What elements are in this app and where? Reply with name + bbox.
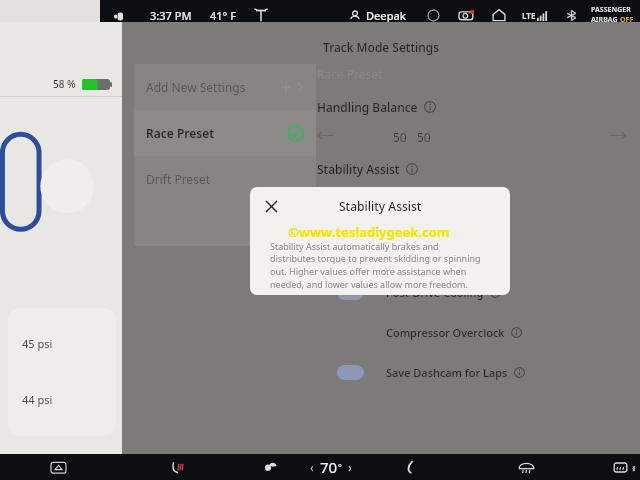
staticText: Add New Settings bbox=[146, 79, 246, 95]
staticText: ‹ bbox=[310, 459, 314, 475]
button[interactable]: Close bbox=[260, 195, 282, 217]
button[interactable]: Fan bbox=[258, 455, 282, 479]
button[interactable]: Post-Drive Cooling bbox=[317, 280, 626, 304]
button[interactable]: Handling Balance bbox=[317, 99, 436, 115]
staticText: 3:37 PM bbox=[150, 8, 192, 23]
button[interactable]: Home bbox=[490, 6, 508, 24]
staticText: Deepak bbox=[366, 8, 406, 23]
button[interactable]: Seat heater bbox=[166, 455, 190, 479]
staticText: PASSENGER bbox=[591, 5, 631, 15]
staticText: ° bbox=[338, 461, 342, 473]
staticText: LTE bbox=[522, 10, 536, 21]
staticText: Save Dashcam for Laps bbox=[386, 365, 508, 380]
staticText: OFF bbox=[620, 15, 634, 25]
button[interactable]: Touch bbox=[112, 7, 128, 23]
staticText: 41° F bbox=[210, 8, 236, 23]
staticText: 45 psi bbox=[22, 336, 53, 351]
button[interactable]: Wiper bbox=[424, 6, 442, 24]
staticText: Race Preset bbox=[146, 125, 215, 141]
button[interactable]: Camera bbox=[456, 5, 476, 25]
staticText: 50 bbox=[393, 129, 407, 145]
button[interactable]: Deepak bbox=[347, 8, 408, 23]
staticText: 50 bbox=[417, 129, 431, 145]
staticText: Race Preset bbox=[317, 66, 383, 82]
staticText: Stability Assist bbox=[317, 161, 400, 177]
button[interactable]: Add New Settings bbox=[134, 64, 316, 110]
button[interactable]: Compressor Overclock bbox=[317, 320, 626, 344]
staticText: Stability Assist automatically brakes an… bbox=[270, 240, 502, 291]
button[interactable]: Save Dashcam for Laps bbox=[317, 360, 626, 384]
button[interactable] bbox=[134, 202, 316, 246]
staticText: 100% bbox=[425, 243, 454, 258]
button[interactable]: ‹ bbox=[310, 457, 352, 477]
button[interactable]: 45 psi bbox=[8, 308, 116, 436]
staticText: ©www.tesladiygeek.com bbox=[288, 223, 450, 241]
staticText: 70 bbox=[320, 457, 338, 477]
button[interactable]: LTE bbox=[522, 10, 549, 21]
button[interactable]: ‹ bbox=[632, 459, 640, 475]
button[interactable]: Front defrost bbox=[514, 455, 538, 479]
button[interactable]: Air direction bbox=[398, 455, 422, 479]
button[interactable]: PASSENGER bbox=[591, 5, 634, 25]
button[interactable]: Drift Preset bbox=[134, 156, 316, 202]
staticText: Compressor Overclock bbox=[386, 325, 505, 340]
staticText: › bbox=[348, 459, 352, 475]
staticText: 58 % bbox=[53, 77, 76, 91]
button[interactable]: Race Preset bbox=[134, 110, 316, 156]
button[interactable]: Car bbox=[46, 455, 70, 479]
staticText: Handling Balance bbox=[317, 99, 418, 115]
staticText: Stability Assist bbox=[339, 198, 422, 214]
button[interactable]: Tesla bbox=[252, 6, 270, 24]
button[interactable]: Stability Assist bbox=[317, 161, 418, 177]
staticText: AIRBAG bbox=[591, 15, 618, 25]
staticText: Post-Drive Cooling bbox=[386, 285, 484, 300]
staticText: Track Mode Settings bbox=[323, 39, 440, 55]
staticText: Drift Preset bbox=[146, 171, 210, 187]
button[interactable]: Rear defrost bbox=[608, 455, 632, 479]
button[interactable]: Bluetooth bbox=[563, 7, 579, 23]
staticText: 44 psi bbox=[22, 392, 53, 407]
